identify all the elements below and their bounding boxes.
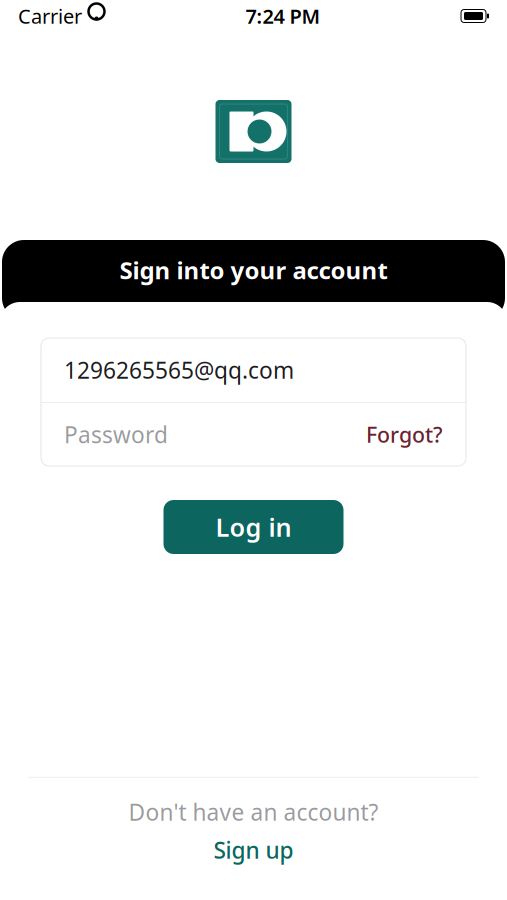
staticText: Sign into your account bbox=[119, 254, 387, 286]
button[interactable]: Sign up bbox=[199, 831, 307, 869]
staticText: Carrier bbox=[18, 3, 82, 29]
staticText: Sign up bbox=[213, 835, 293, 865]
staticText: 7:24 PM bbox=[245, 3, 320, 29]
staticText: Don't have an account? bbox=[128, 797, 378, 827]
staticText: 1296265565@qq.com bbox=[64, 355, 294, 385]
staticText: Forgot? bbox=[366, 420, 443, 449]
staticText: Password bbox=[64, 419, 168, 449]
button[interactable]: Forgot? bbox=[366, 420, 443, 449]
button[interactable]: Log in bbox=[163, 500, 343, 554]
staticText: Log in bbox=[215, 510, 291, 544]
